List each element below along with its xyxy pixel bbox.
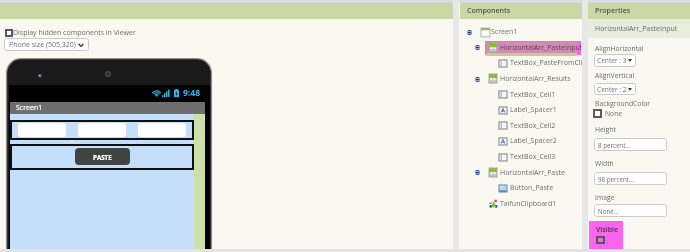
staticText: Center : 3 bbox=[597, 56, 627, 65]
button[interactable]: Phone size (505,320) bbox=[4, 38, 89, 51]
staticText: 98 percent... bbox=[598, 175, 634, 183]
staticText: TextBox_Cell2 bbox=[510, 121, 556, 131]
button[interactable]: None... bbox=[594, 204, 667, 217]
staticText: Phone size (505,320) bbox=[9, 40, 76, 50]
staticText: Label_Spacer1 bbox=[510, 105, 557, 115]
staticText: Properties bbox=[595, 6, 631, 16]
button[interactable] bbox=[459, 25, 582, 40]
staticText: PASTE bbox=[93, 153, 112, 161]
staticText: 9:48 bbox=[183, 87, 201, 99]
staticText: Screen1 bbox=[491, 27, 518, 37]
button[interactable]: PASTE bbox=[75, 148, 130, 165]
button[interactable] bbox=[78, 123, 126, 137]
button[interactable]: Center : 2 bbox=[594, 83, 636, 95]
button[interactable] bbox=[18, 123, 66, 137]
staticText: TextBox_PasteFromCli bbox=[510, 58, 583, 68]
staticText: HorizontalArr_PasteInput bbox=[500, 43, 583, 53]
staticText: BackgroundColor bbox=[595, 99, 650, 108]
button[interactable] bbox=[459, 181, 582, 196]
button[interactable] bbox=[459, 87, 582, 102]
staticText: Visible bbox=[596, 225, 619, 235]
staticText: Components bbox=[467, 6, 511, 16]
staticText: TextBox_Cell3 bbox=[510, 152, 556, 162]
staticText: Width bbox=[595, 159, 614, 168]
staticText: TaifunClipboard1 bbox=[500, 199, 557, 209]
button[interactable]: Visible bbox=[589, 221, 623, 249]
button[interactable]: 8 percent... bbox=[594, 138, 667, 151]
staticText: AlignHorizontal bbox=[595, 44, 644, 53]
staticText: TextBox_Cell1 bbox=[510, 90, 556, 100]
button[interactable] bbox=[459, 150, 582, 165]
staticText: Height bbox=[595, 125, 616, 134]
staticText: Display hidden components in Viewer bbox=[13, 28, 136, 38]
staticText: Center : 2 bbox=[597, 85, 627, 94]
button[interactable] bbox=[459, 103, 582, 118]
staticText: Image bbox=[595, 193, 615, 202]
button[interactable] bbox=[459, 165, 582, 180]
staticText: HorizontalArr_PasteInput bbox=[595, 24, 678, 34]
button[interactable]: Display hidden components in Viewer bbox=[5, 29, 13, 37]
staticText: AlignVertical bbox=[595, 71, 635, 80]
button[interactable]: Center : 3 bbox=[594, 54, 636, 67]
staticText: None bbox=[605, 109, 623, 118]
staticText: HorizontalArr_Paste bbox=[500, 168, 566, 178]
staticText: 8 percent... bbox=[598, 141, 631, 149]
button[interactable]: PASTE bbox=[12, 146, 192, 168]
button[interactable] bbox=[459, 40, 582, 55]
button[interactable] bbox=[459, 56, 582, 71]
button[interactable] bbox=[459, 118, 582, 133]
staticText: Button_Paste bbox=[510, 183, 554, 193]
button[interactable] bbox=[459, 196, 582, 211]
button[interactable]: 98 percent... bbox=[594, 172, 667, 185]
button[interactable] bbox=[12, 122, 192, 138]
button[interactable] bbox=[138, 123, 186, 137]
button[interactable] bbox=[459, 71, 582, 86]
staticText: None... bbox=[598, 207, 619, 215]
staticText: Screen1 bbox=[16, 103, 43, 113]
button[interactable]: BackgroundColor None bbox=[592, 107, 632, 119]
staticText: HorizontalArr_Results bbox=[500, 74, 571, 84]
staticText: Label_Spacer2 bbox=[510, 136, 557, 146]
button[interactable] bbox=[459, 134, 582, 149]
